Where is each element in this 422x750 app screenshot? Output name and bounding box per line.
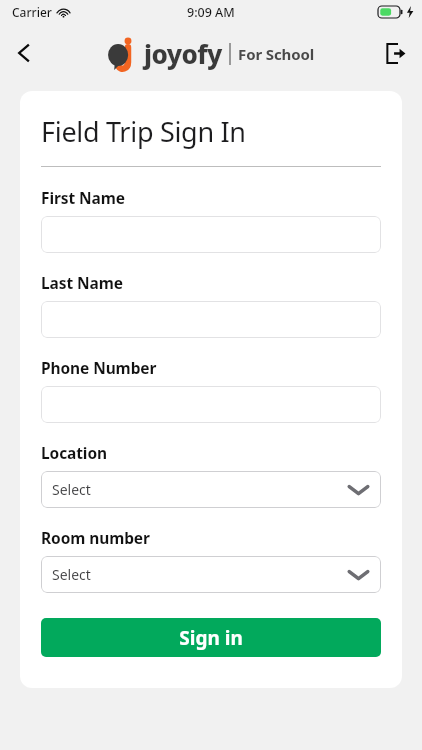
button[interactable]: Text input	[41, 216, 381, 253]
button[interactable]: Back	[4, 33, 44, 73]
staticText: Select	[52, 565, 91, 584]
staticText: Location	[41, 442, 107, 463]
staticText: 9:09 AM	[187, 4, 235, 21]
button[interactable]: Log out	[374, 33, 414, 73]
staticText: Select	[52, 480, 91, 499]
staticText: First Name	[41, 187, 125, 208]
staticText: Sign in	[179, 625, 243, 651]
button[interactable]: Sign in	[41, 618, 381, 657]
button[interactable]: Text input	[41, 386, 381, 423]
staticText: Carrier	[12, 4, 52, 20]
button[interactable]: Select	[41, 556, 381, 593]
staticText: joyofy	[144, 36, 222, 71]
staticText: Field Trip Sign In	[41, 113, 246, 150]
staticText: Room number	[41, 527, 150, 548]
button[interactable]: Select	[41, 471, 381, 508]
staticText: Last Name	[41, 272, 123, 293]
staticText: Phone Number	[41, 357, 157, 378]
button[interactable]: Text input	[41, 301, 381, 338]
staticText: For School	[238, 44, 315, 64]
